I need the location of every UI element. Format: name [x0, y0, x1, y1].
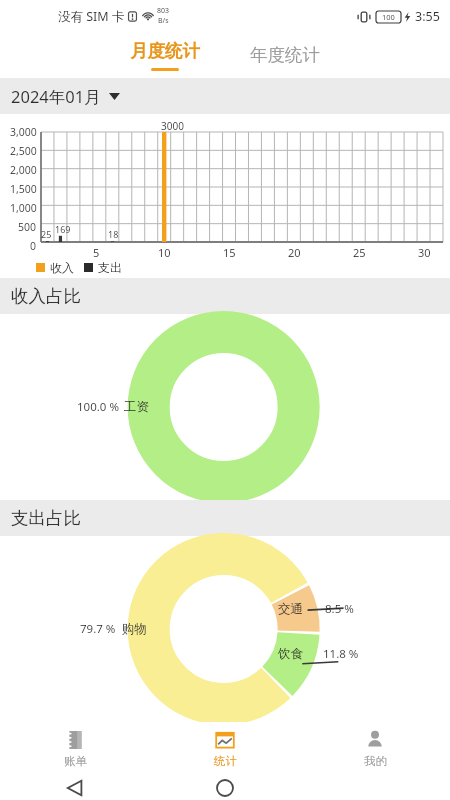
staticText: 2,000	[10, 163, 37, 177]
staticText: 500	[18, 220, 37, 234]
staticText: 20	[288, 245, 301, 260]
staticText: 支出占比	[11, 507, 81, 529]
staticText: 饮食	[278, 646, 303, 662]
staticText: 100.0 %	[77, 399, 119, 415]
staticText: 79.7 %	[80, 621, 116, 637]
staticText: 803	[157, 6, 170, 16]
staticText: 25	[41, 228, 52, 240]
staticText: 3000	[161, 119, 184, 133]
staticText: 月度统计	[130, 40, 200, 62]
staticText: 10	[158, 245, 171, 260]
staticText: 收入占比	[11, 285, 81, 307]
staticText: 0	[30, 239, 37, 253]
staticText: 交通	[278, 601, 303, 617]
button[interactable]: Home	[150, 776, 300, 800]
button[interactable]: 账单	[0, 722, 150, 776]
button[interactable]: 年度统计	[234, 41, 336, 69]
staticText: 购物	[122, 621, 147, 637]
staticText: 100	[382, 12, 395, 22]
staticText: 账单	[64, 754, 87, 768]
staticText: B/s	[158, 16, 169, 26]
button[interactable]: 月度统计	[114, 37, 216, 74]
staticText: 1,500	[10, 182, 37, 196]
staticText: 3:55	[415, 8, 440, 25]
staticText: 1,000	[10, 201, 37, 215]
staticText: 支出	[98, 260, 122, 275]
staticText: 8.5 %	[325, 601, 354, 617]
button[interactable]: 我的	[300, 722, 450, 776]
staticText: 18	[108, 228, 119, 240]
staticText: 2,500	[10, 144, 37, 158]
staticText: 2024年01月	[11, 85, 101, 108]
staticText: 工资	[124, 399, 149, 415]
staticText: 15	[223, 245, 236, 260]
button[interactable]: Back	[0, 776, 150, 800]
staticText: 169	[55, 223, 71, 235]
staticText: 11.8 %	[323, 646, 359, 662]
staticText: 收入	[50, 260, 74, 275]
staticText: 我的	[364, 754, 387, 768]
staticText: 年度统计	[250, 44, 320, 66]
staticText: 30	[418, 245, 431, 260]
staticText: 没有 SIM 卡	[58, 8, 125, 25]
button[interactable]: 统计	[150, 722, 300, 776]
staticText: 3,000	[10, 125, 37, 139]
staticText: 5	[93, 245, 100, 260]
staticText: 统计	[214, 754, 237, 768]
button[interactable]: 2024年01月	[0, 78, 450, 114]
staticText: 25	[353, 245, 366, 260]
